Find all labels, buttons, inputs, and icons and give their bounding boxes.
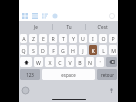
staticText: Je <box>34 24 38 30</box>
button[interactable]: Emoji <box>22 87 29 94</box>
staticText: R <box>51 35 55 42</box>
button[interactable]: C'est <box>86 21 118 32</box>
staticText: O <box>101 35 106 42</box>
staticText: C'est <box>97 24 108 30</box>
button[interactable]: 123 <box>20 69 40 80</box>
button[interactable]: Format <box>22 13 28 19</box>
button[interactable]: Close <box>109 13 115 19</box>
button[interactable]: I <box>89 34 97 43</box>
button[interactable]: R <box>49 34 57 43</box>
staticText: W <box>36 59 41 66</box>
staticText: M <box>111 47 116 54</box>
staticText: E <box>42 35 45 42</box>
button[interactable]: N <box>86 57 94 67</box>
staticText: 123 <box>26 72 34 78</box>
button[interactable]: Tu <box>53 21 85 32</box>
staticText: Y <box>72 35 75 42</box>
button[interactable]: Documents <box>32 13 38 19</box>
button[interactable]: T <box>59 34 67 43</box>
staticText: Tu <box>66 24 72 30</box>
button[interactable]: X <box>45 57 54 67</box>
button[interactable]: Z <box>29 34 37 43</box>
staticText: P <box>111 35 115 42</box>
button[interactable]: A <box>20 34 27 43</box>
staticText: H <box>71 47 75 54</box>
button[interactable]: W <box>34 57 43 67</box>
button[interactable]: F <box>49 45 57 55</box>
staticText: D <box>41 47 45 54</box>
button[interactable]: V <box>66 57 74 67</box>
staticText: U <box>81 35 85 42</box>
button[interactable]: Backspace <box>106 57 117 67</box>
staticText: Q <box>21 47 26 54</box>
button[interactable]: Shift <box>20 57 32 67</box>
button[interactable]: C <box>56 57 64 67</box>
button[interactable]: S <box>29 45 37 55</box>
staticText: V <box>68 59 72 66</box>
button[interactable]: Je <box>19 21 52 32</box>
staticText: N <box>88 59 92 66</box>
staticText: retour <box>101 72 114 78</box>
button[interactable]: Y <box>69 34 77 43</box>
staticText: J <box>82 47 84 54</box>
staticText: K <box>91 47 95 54</box>
button[interactable]: H <box>69 45 77 55</box>
button[interactable]: U <box>79 34 87 43</box>
staticText: C <box>58 59 62 66</box>
staticText: ' <box>99 59 101 66</box>
button[interactable]: List <box>42 13 48 19</box>
button[interactable]: D <box>39 45 47 55</box>
button[interactable]: retour <box>97 69 117 80</box>
staticText: X <box>48 59 52 66</box>
button[interactable]: O <box>99 34 107 43</box>
button[interactable]: B <box>76 57 84 67</box>
staticText: Z <box>32 35 35 42</box>
button[interactable]: Highlight <box>52 13 58 19</box>
button[interactable]: L <box>99 45 107 55</box>
button[interactable]: K <box>89 45 97 55</box>
staticText: G <box>61 47 65 54</box>
button[interactable]: E <box>39 34 47 43</box>
staticText: espace <box>61 72 76 78</box>
staticText: L <box>102 47 105 54</box>
button[interactable]: ' <box>96 57 104 67</box>
button[interactable]: Dictate <box>108 87 115 94</box>
button[interactable]: espace <box>42 69 95 80</box>
button[interactable]: G <box>59 45 67 55</box>
staticText: S <box>32 47 35 54</box>
button[interactable]: J <box>79 45 87 55</box>
staticText: A <box>22 35 26 42</box>
staticText: I <box>92 35 94 42</box>
staticText: B <box>78 59 82 66</box>
staticText: F <box>52 47 55 54</box>
button[interactable]: P <box>109 34 117 43</box>
button[interactable]: Q <box>20 45 27 55</box>
staticText: T <box>62 35 65 42</box>
button[interactable]: M <box>109 45 117 55</box>
